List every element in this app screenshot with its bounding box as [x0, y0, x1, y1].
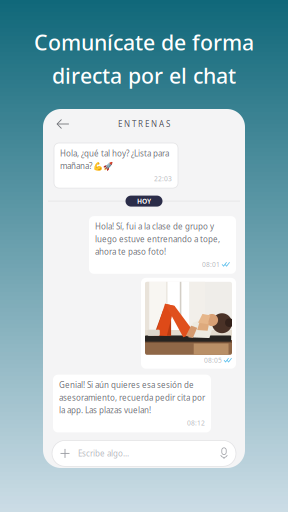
staticText: 08:12	[187, 419, 205, 427]
staticText: HOY	[137, 197, 151, 206]
staticText: mañana?	[60, 161, 92, 171]
staticText: 08:01	[202, 260, 220, 269]
staticText: Comunícate de forma	[34, 28, 254, 56]
staticText: la app. Las plazas vuelan!	[59, 405, 151, 415]
staticText: asesoramiento, recuerda pedir cita por	[59, 392, 205, 403]
staticText: ahora te paso foto!	[95, 246, 166, 257]
button[interactable]: Escribe algo...	[52, 440, 236, 466]
staticText: Hola, ¿qué tal hoy? ¿Lista para	[60, 148, 169, 159]
staticText: luego estuve entrenando a tope,	[95, 234, 220, 244]
staticText: Escribe algo...	[78, 448, 129, 459]
staticText: E N T R E N A S	[118, 119, 170, 129]
staticText: 22:03	[154, 174, 172, 183]
staticText: directa por el chat	[52, 61, 236, 90]
staticText: 💪🚀	[93, 161, 113, 170]
staticText: Hola! Sí, fui a la clase de grupo y	[95, 221, 214, 232]
button[interactable]: Back	[50, 112, 76, 136]
staticText: Genial! Si aún quieres esa sesión de	[59, 380, 194, 390]
staticText: 08:05	[204, 356, 222, 365]
